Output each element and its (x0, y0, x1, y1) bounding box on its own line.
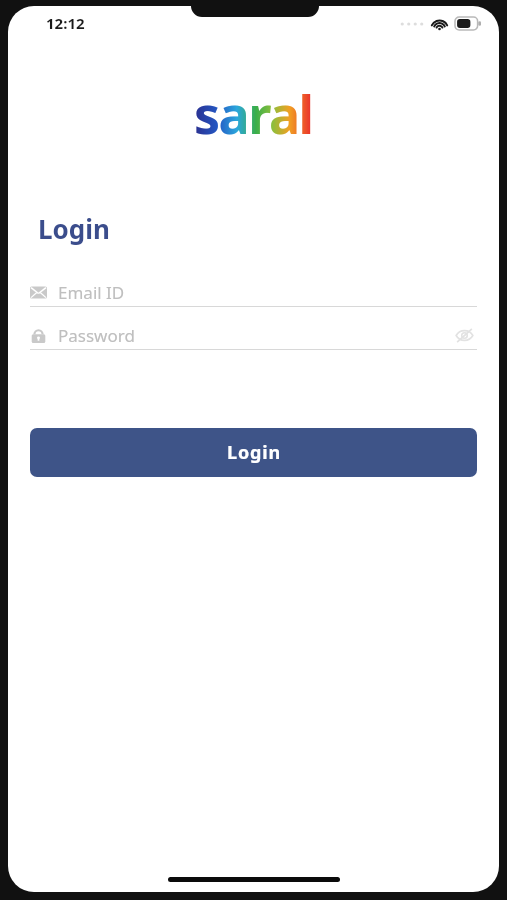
staticText: Password (58, 324, 451, 347)
staticText: 12:12 (46, 13, 85, 33)
staticText: Email ID (58, 281, 477, 304)
button[interactable]: Login (30, 428, 477, 477)
button[interactable]: Email ID (30, 278, 477, 306)
staticText: Login (227, 440, 281, 465)
staticText: Login (38, 211, 110, 246)
button[interactable]: Password (30, 321, 477, 349)
button[interactable]: Show password (451, 322, 477, 348)
staticText: saral (194, 78, 313, 149)
